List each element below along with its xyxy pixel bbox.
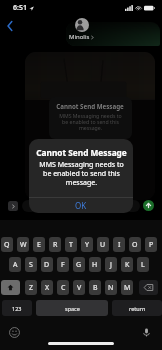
button[interactable]: K [121, 257, 133, 272]
button[interactable]: Dictate [141, 327, 152, 338]
button[interactable]: W [17, 237, 29, 252]
button[interactable]: H [89, 257, 101, 272]
button[interactable]: U [97, 237, 109, 252]
button[interactable]: Cannot Send Message [25, 52, 155, 200]
button[interactable]: L [137, 257, 149, 272]
button[interactable]: 123 [2, 300, 32, 316]
staticText: OK [75, 200, 87, 211]
staticText: K [125, 260, 130, 270]
button[interactable]: C [57, 280, 69, 295]
staticText: X [45, 283, 50, 293]
staticText: U [100, 240, 106, 250]
staticText: MMS Messaging needs to be enabled to sen… [39, 160, 124, 187]
staticText: O [132, 240, 138, 250]
staticText: Y [85, 240, 89, 250]
staticText: J [110, 260, 112, 270]
staticText: return [129, 305, 146, 312]
button[interactable]: O [129, 237, 141, 252]
button[interactable]: Q [1, 237, 13, 252]
staticText: space [65, 305, 80, 312]
staticText: E [37, 240, 41, 250]
button[interactable]: N [105, 280, 117, 295]
button[interactable]: return [112, 300, 162, 316]
staticText: MMS Messaging needs to be enabled to sen… [59, 112, 122, 132]
staticText: T [69, 240, 73, 250]
staticText: V [77, 283, 82, 293]
button[interactable]: Emoji [9, 327, 20, 338]
button[interactable]: Back [2, 18, 18, 34]
staticText: C [61, 283, 66, 293]
button[interactable]: J [105, 257, 117, 272]
staticText: A [13, 260, 18, 270]
staticText: S [29, 260, 33, 270]
staticText: Cannot Send Message [36, 147, 127, 158]
button[interactable]: Z [25, 280, 37, 295]
staticText: I [118, 240, 121, 250]
button[interactable]: R [49, 237, 61, 252]
button[interactable]: V [73, 280, 85, 295]
button[interactable]: F [57, 257, 69, 272]
button[interactable]: A [9, 257, 21, 272]
button[interactable]: Shift [1, 280, 20, 295]
button[interactable]: Backspace [139, 280, 158, 295]
button[interactable]: B [89, 280, 101, 295]
button[interactable]: Apps [8, 201, 18, 211]
staticText: G [76, 260, 82, 270]
staticText: R [53, 240, 58, 250]
staticText: 123 [12, 305, 22, 312]
button[interactable] [22, 200, 140, 212]
button[interactable]: Send [143, 200, 154, 211]
staticText: H [92, 260, 98, 270]
button[interactable]: G [73, 257, 85, 272]
button[interactable]: P [145, 237, 157, 252]
staticText: 6:51 [13, 3, 27, 13]
button[interactable]: Minolis [69, 18, 94, 41]
button[interactable]: Y [81, 237, 93, 252]
staticText: W [20, 240, 27, 250]
button[interactable]: S [25, 257, 37, 272]
staticText: P [149, 240, 154, 250]
staticText: Q [4, 240, 10, 250]
staticText: L [141, 260, 145, 270]
staticText: F [61, 260, 65, 270]
button[interactable]: M [121, 280, 133, 295]
button[interactable]: T [65, 237, 77, 252]
button[interactable]: X [41, 280, 53, 295]
staticText: D [44, 260, 50, 270]
button[interactable]: space [36, 300, 108, 316]
button[interactable]: OK [29, 197, 133, 213]
button[interactable]: I [113, 237, 125, 252]
button[interactable]: D [41, 257, 53, 272]
staticText: Cannot Send Message [56, 102, 124, 110]
staticText: N [108, 283, 114, 293]
staticText: Z [29, 283, 34, 293]
staticText: B [93, 283, 98, 293]
staticText: Minolis [69, 33, 90, 41]
staticText: M [124, 283, 131, 293]
button[interactable]: E [33, 237, 45, 252]
